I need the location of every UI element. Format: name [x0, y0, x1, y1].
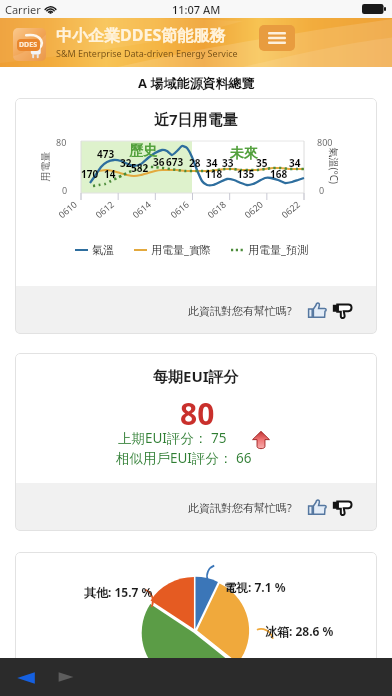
staticText: 此資訊對您有幫忙嗎? [188, 500, 292, 515]
staticText: S&M Enterprise Data-driven Energy Servic… [56, 47, 238, 59]
staticText: 28 [189, 156, 201, 170]
staticText: 35 [256, 156, 268, 170]
staticText: 近7日用電量 [154, 109, 238, 129]
staticText: 其他: 15.7 % [84, 584, 153, 600]
staticText: 34 [206, 156, 218, 170]
staticText: 0610 [56, 198, 79, 220]
staticText: 673 [166, 155, 184, 169]
staticText: 11:07 AM [172, 2, 221, 17]
staticText: 135 [237, 167, 255, 181]
staticText: 中小企業DDES節能服務 [56, 24, 226, 46]
staticText: 此資訊對您有幫忙嗎? [188, 303, 292, 318]
staticText: 36 [153, 155, 165, 169]
staticText: 118 [205, 167, 223, 181]
staticText: 0622 [279, 198, 302, 220]
staticText: 582 [131, 161, 149, 175]
staticText: 170 [81, 167, 99, 181]
button[interactable]: Helpful [306, 496, 328, 518]
staticText: Carrier [5, 2, 41, 17]
staticText: DDES [19, 40, 38, 50]
staticText: 80 [180, 393, 215, 434]
staticText: 0 [319, 184, 325, 196]
button[interactable]: Menu [259, 25, 295, 51]
staticText: 0620 [242, 198, 265, 220]
staticText: 800 [317, 136, 333, 148]
staticText: 用電量_預測 [248, 242, 308, 257]
staticText: 32 [120, 156, 132, 170]
button[interactable]: Helpful [306, 299, 328, 321]
staticText: 氣溫 [92, 243, 114, 257]
staticText: 34 [289, 156, 301, 170]
staticText: 14 [104, 167, 116, 181]
staticText: 上期EUI評分： 75 [118, 429, 227, 447]
staticText: 168 [270, 167, 288, 181]
staticText: 冰箱: 28.6 % [265, 623, 334, 639]
staticText: 相似用戶EUI評分： 66 [116, 449, 252, 467]
staticText: 0614 [130, 198, 153, 220]
button[interactable]: Not helpful [330, 298, 354, 322]
staticText: 0612 [93, 198, 116, 220]
staticText: 用電量 [38, 151, 51, 181]
staticText: 每期EUI評分 [153, 366, 239, 386]
button[interactable]: Forward [55, 667, 75, 687]
staticText: 0 [62, 184, 68, 196]
staticText: A 場域能源資料總覽 [138, 74, 255, 92]
staticText: 473 [97, 147, 115, 161]
staticText: 氣溫(°C) [326, 147, 340, 184]
staticText: 用電量_實際 [151, 242, 211, 257]
staticText: 未來 [230, 145, 258, 163]
staticText: 電視: 7.1 % [224, 579, 286, 595]
staticText: 33 [222, 156, 234, 170]
staticText: 80 [56, 136, 67, 148]
staticText: 歷史 [129, 142, 157, 160]
staticText: 0616 [168, 198, 191, 220]
button[interactable]: Not helpful [330, 495, 354, 519]
staticText: 0618 [205, 198, 228, 220]
button[interactable]: Back [15, 667, 37, 689]
